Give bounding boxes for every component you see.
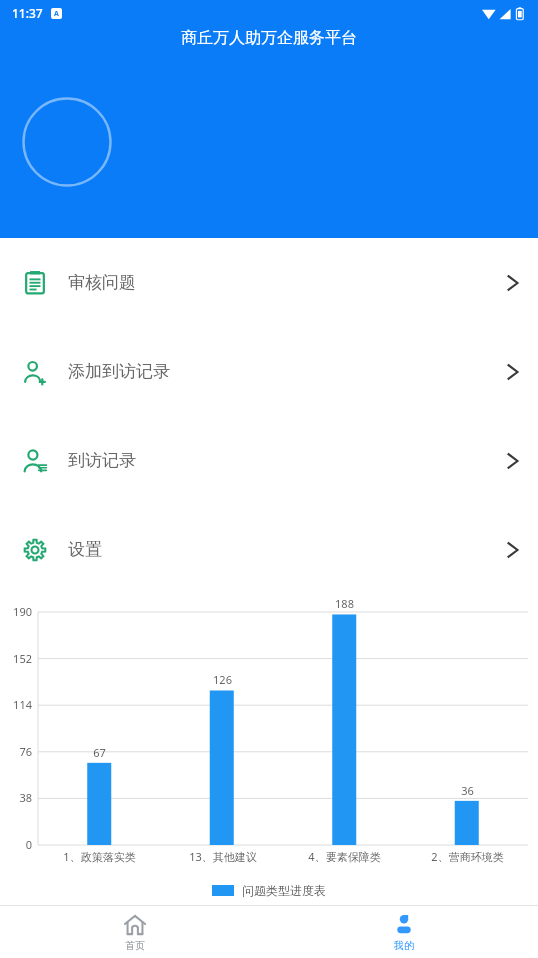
staticText: 152 xyxy=(13,651,32,666)
staticText: 审核问题 xyxy=(68,272,136,293)
button[interactable]: 设置 xyxy=(0,505,538,594)
staticText: 商丘万人助万企服务平台 xyxy=(181,28,357,48)
staticText: 1、政策落实类 xyxy=(63,849,136,864)
button[interactable]: 首页 xyxy=(0,906,269,958)
staticText: 36 xyxy=(461,783,474,798)
button[interactable]: 到访记录 xyxy=(0,416,538,505)
staticText: 11:37 xyxy=(12,5,43,21)
staticText: 首页 xyxy=(125,939,145,952)
button[interactable]: 我的 xyxy=(269,906,538,958)
button[interactable]: 审核问题 xyxy=(0,238,538,327)
staticText: 13、其他建议 xyxy=(189,849,257,864)
staticText: 38 xyxy=(19,790,32,805)
staticText: 190 xyxy=(13,604,32,619)
staticText: 0 xyxy=(25,837,32,852)
staticText: 188 xyxy=(335,596,354,611)
staticText: 114 xyxy=(13,697,32,712)
staticText: 问题类型进度表 xyxy=(242,883,326,898)
staticText: 4、要素保障类 xyxy=(308,849,381,864)
staticText: 67 xyxy=(93,745,106,760)
staticText: 76 xyxy=(19,744,32,759)
button[interactable]: Avatar xyxy=(22,97,112,187)
staticText: 添加到访记录 xyxy=(68,361,170,382)
staticText: 我的 xyxy=(394,939,414,952)
button[interactable]: 添加到访记录 xyxy=(0,327,538,416)
staticText: 126 xyxy=(213,672,232,687)
staticText: 设置 xyxy=(68,539,102,560)
staticText: A xyxy=(54,9,59,19)
staticText: 2、营商环境类 xyxy=(431,849,504,864)
staticText: 到访记录 xyxy=(68,450,136,471)
